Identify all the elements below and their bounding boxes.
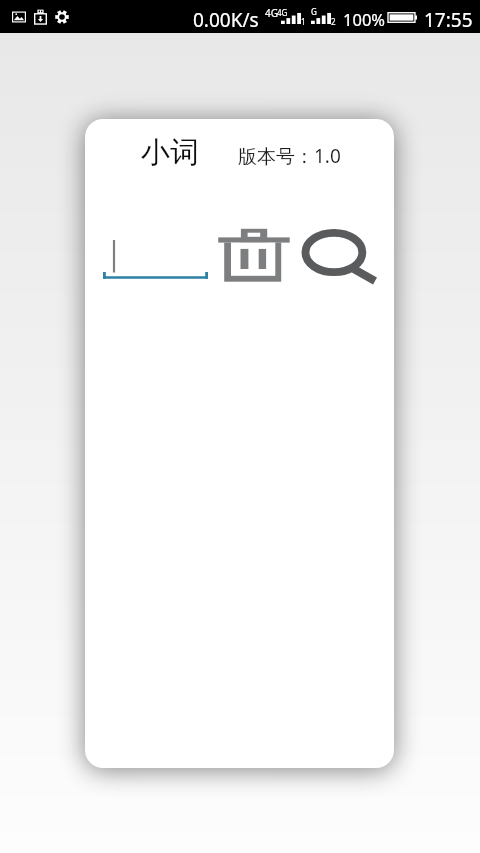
staticText: 版本号：1.0: [238, 143, 341, 169]
button[interactable]: Search input: [103, 234, 208, 282]
staticText: 0.00K/s: [193, 7, 259, 33]
staticText: 4G: [277, 7, 288, 18]
staticText: 1: [301, 16, 306, 27]
button[interactable]: Delete: [213, 224, 295, 286]
staticText: 100%: [343, 8, 386, 30]
button[interactable]: Search: [296, 224, 382, 288]
staticText: 小词: [141, 134, 199, 171]
staticText: 4G: [265, 6, 278, 20]
staticText: G: [311, 6, 317, 17]
staticText: 17:55: [424, 7, 473, 33]
staticText: 2: [331, 16, 336, 27]
